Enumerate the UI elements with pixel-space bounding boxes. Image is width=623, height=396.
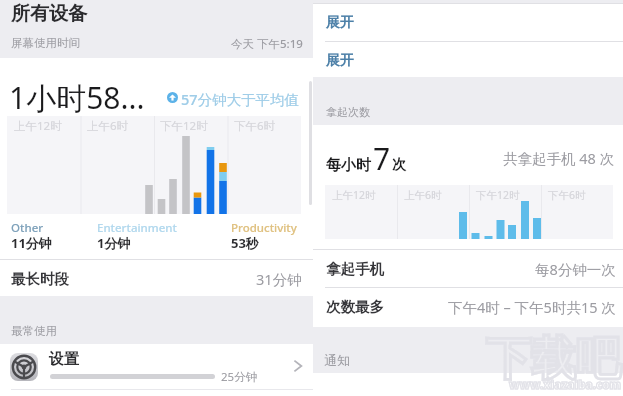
staticText: 11分钟 (11, 234, 52, 252)
other: More (292, 360, 304, 372)
staticText: 上午6时 (404, 188, 442, 202)
staticText: 上午12时 (332, 188, 376, 202)
staticText: www.xiazaiba.com (509, 377, 622, 393)
staticText: 1小时58... (9, 77, 145, 118)
staticText: 屏幕使用时间 (11, 36, 80, 50)
staticText: 7 (373, 138, 391, 179)
staticText: 次 (392, 156, 406, 174)
button[interactable]: 次数最多 (313, 288, 623, 326)
button[interactable]: 展开 (313, 4, 623, 41)
staticText: 次数最多 (326, 298, 384, 316)
staticText: 最常使用 (11, 324, 57, 338)
staticText: 下午6时 (548, 188, 586, 202)
staticText: 57分钟大于平均值 (181, 89, 300, 109)
staticText: 每8分钟一次 (535, 259, 616, 279)
staticText: 展开 (326, 52, 354, 70)
staticText: 53秒 (231, 234, 259, 252)
staticText: 共拿起手机 48 次 (503, 148, 615, 168)
staticText: 今天 下午5:19 (231, 36, 303, 52)
button[interactable]: 展开 (313, 42, 623, 79)
staticText: 下午6时 (234, 118, 276, 134)
button[interactable]: 拿起手机 (313, 250, 623, 288)
staticText: 下午4时 – 下午5时共15 次 (448, 297, 616, 317)
staticText: 最长时段 (11, 270, 69, 288)
staticText: 拿起手机 (326, 260, 384, 278)
staticText: 下午12时 (160, 118, 208, 134)
staticText: Entertainment (97, 220, 177, 236)
button[interactable]: 最长时段 (0, 260, 313, 298)
staticText: 1分钟 (97, 234, 131, 252)
staticText: Other (11, 220, 44, 236)
staticText: 25分钟 (221, 369, 258, 385)
staticText: 每小时 (326, 156, 371, 175)
staticText: Productivity (231, 220, 297, 236)
staticText: 上午6时 (87, 118, 129, 134)
staticText: 通知 (324, 352, 350, 368)
staticText: 所有设备 (11, 2, 87, 26)
staticText: 拿起次数 (326, 105, 370, 119)
button[interactable]: 设置 (0, 344, 313, 392)
staticText: 展开 (326, 14, 354, 32)
staticText: 下载吧 (486, 331, 621, 388)
staticText: 31分钟 (256, 269, 302, 289)
staticText: 上午12时 (14, 118, 62, 134)
staticText: 设置 (49, 350, 79, 369)
staticText: 下午12时 (476, 188, 520, 202)
